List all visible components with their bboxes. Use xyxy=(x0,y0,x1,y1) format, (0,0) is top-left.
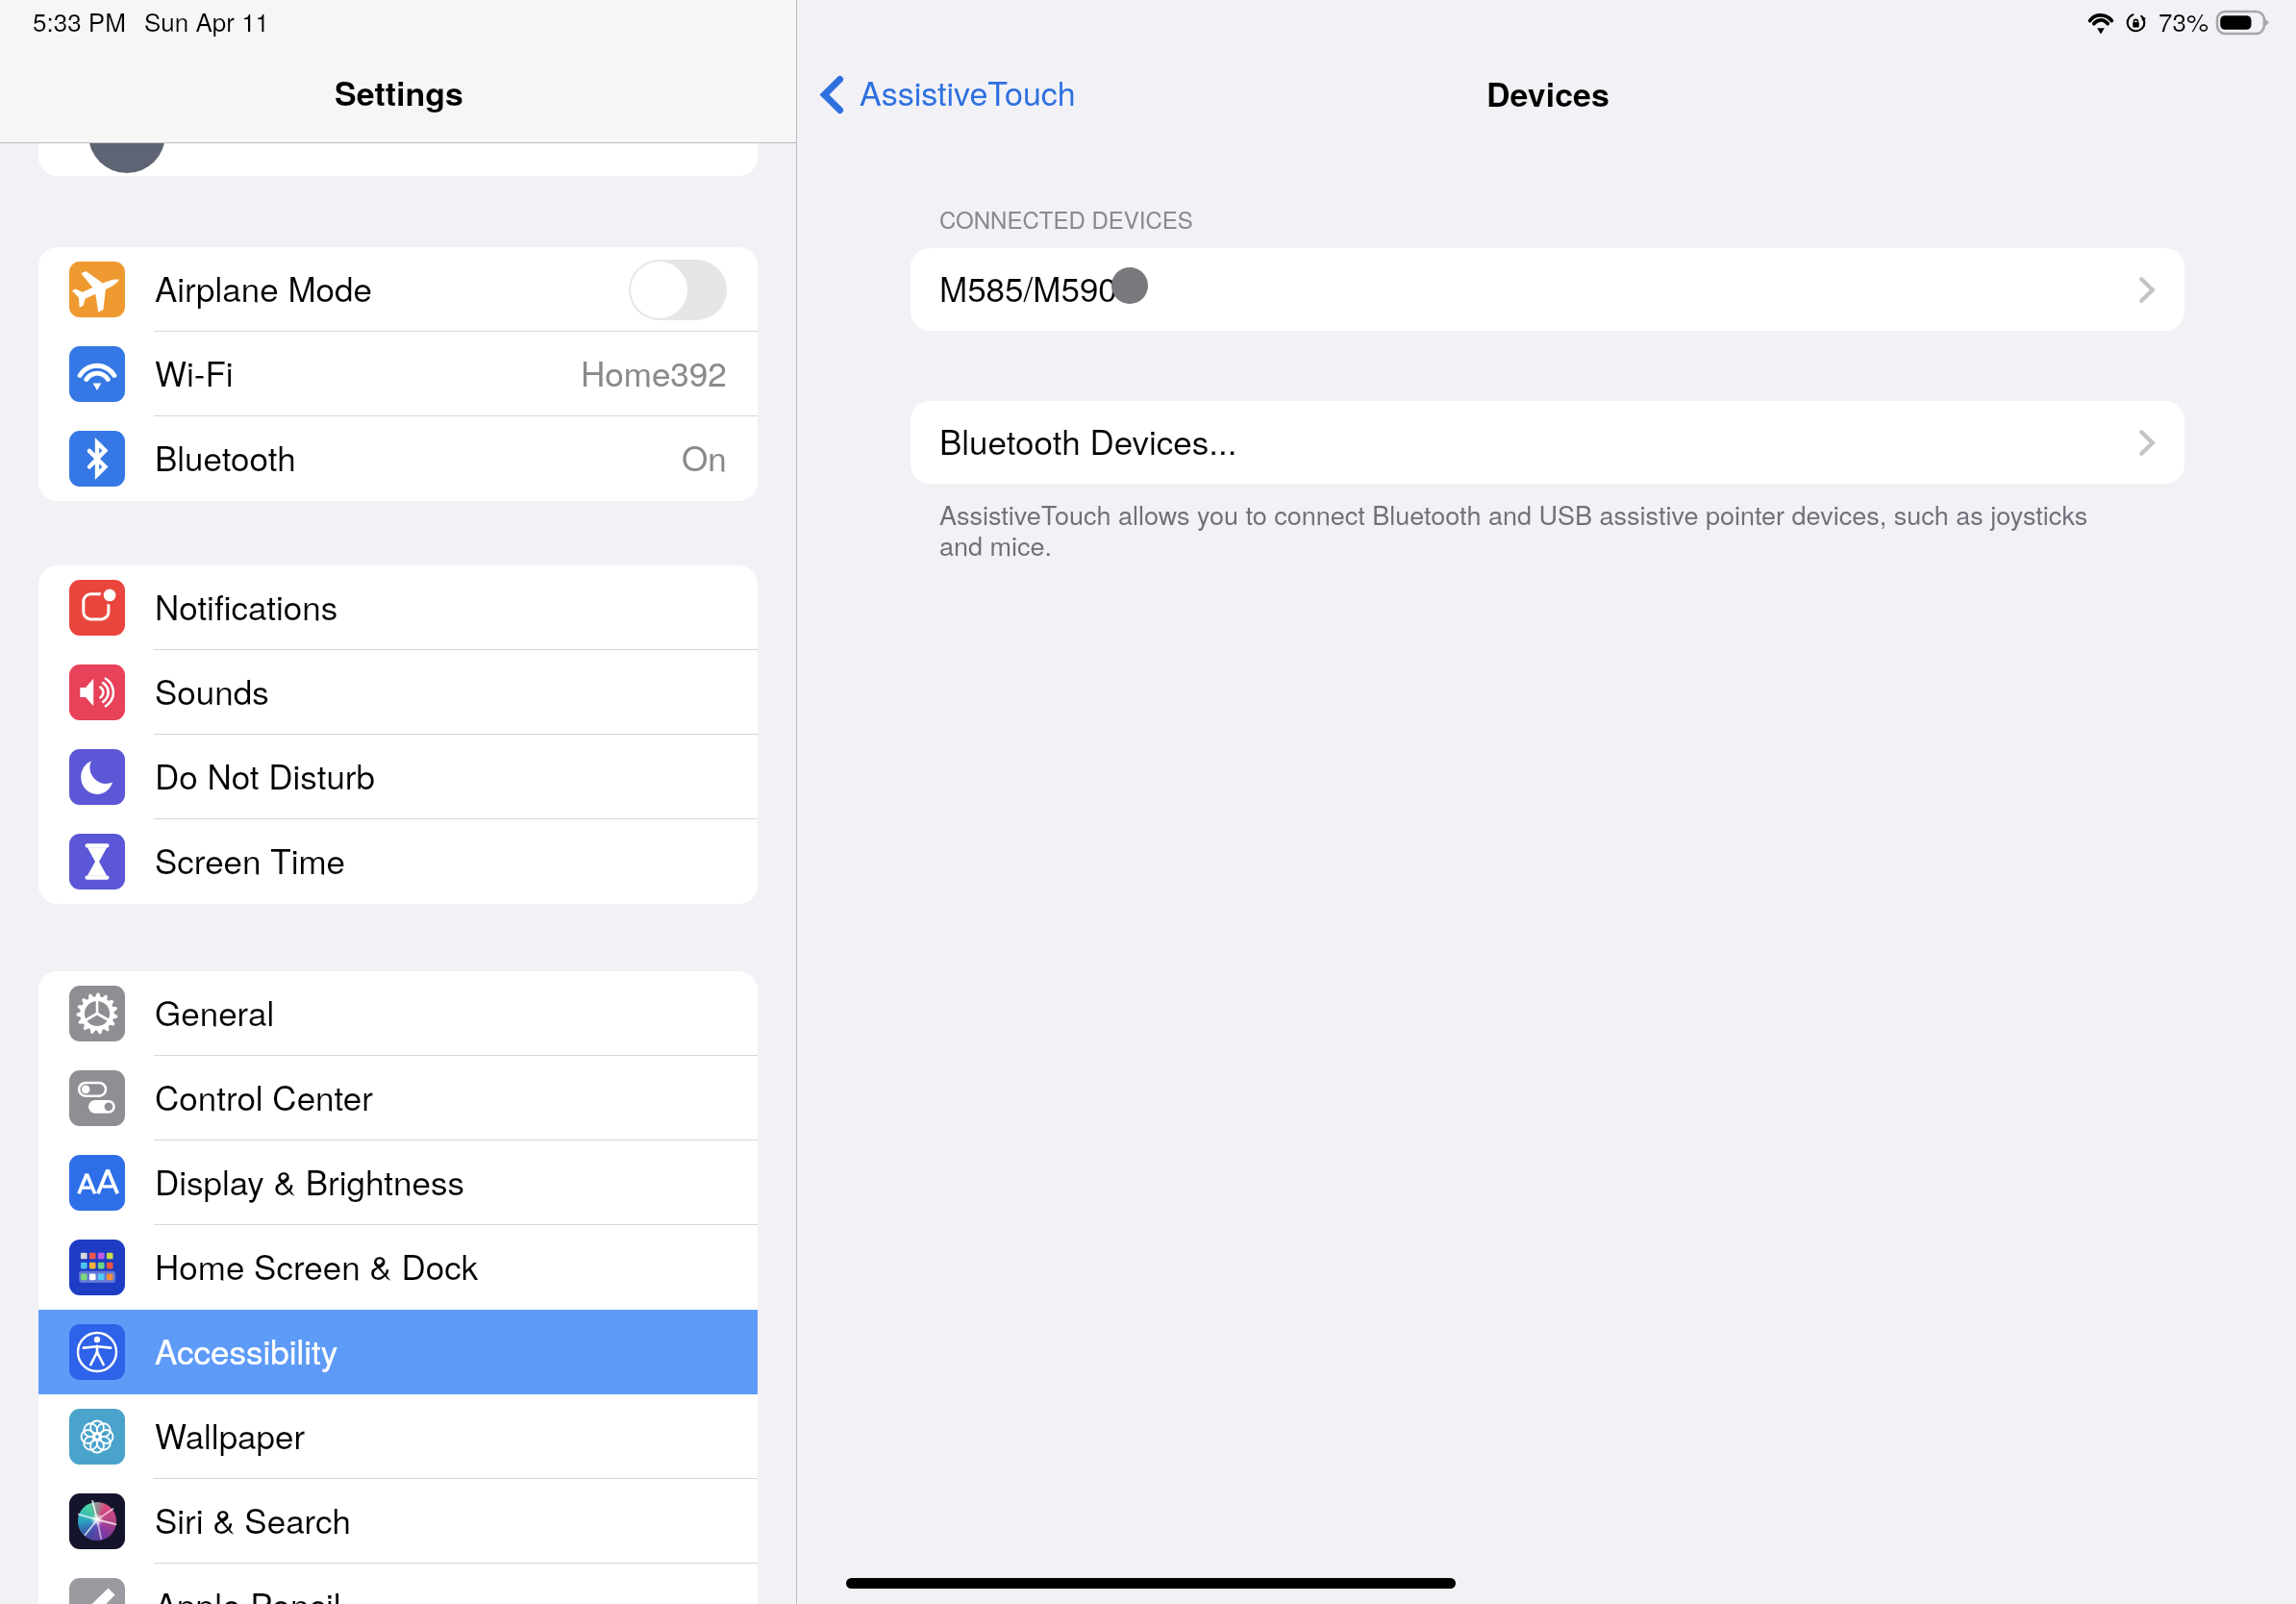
staticText: Siri & Search xyxy=(155,1502,352,1541)
staticText: AssistiveTouch xyxy=(860,75,1076,113)
staticText: CONNECTED DEVICES xyxy=(939,207,1193,234)
button[interactable]: Apple Pencil xyxy=(38,1564,758,1604)
button[interactable]: Accessibility xyxy=(38,1310,758,1394)
staticText: Control Center xyxy=(155,1079,373,1118)
staticText: Settings xyxy=(335,75,463,113)
button[interactable]: Airplane Mode toggle xyxy=(629,260,727,320)
staticText: General xyxy=(155,994,275,1034)
button[interactable]: M585/M590 xyxy=(911,248,2184,331)
staticText: Notifications xyxy=(155,589,338,628)
button[interactable]: General xyxy=(38,971,758,1056)
button[interactable]: Wallpaper xyxy=(38,1394,758,1479)
button[interactable]: Display & Brightness xyxy=(38,1140,758,1225)
staticText: M585/M590 xyxy=(939,270,1117,310)
button[interactable]: Screen Time xyxy=(38,819,758,904)
staticText: Bluetooth xyxy=(155,439,296,479)
staticText: Airplane Mode xyxy=(155,270,372,310)
staticText: Display & Brightness xyxy=(155,1164,465,1203)
staticText: Devices xyxy=(1486,76,1610,114)
staticText: Accessibility xyxy=(155,1333,338,1372)
staticText: Screen Time xyxy=(155,842,346,882)
button[interactable]: Control Center xyxy=(38,1056,758,1140)
staticText: Sun Apr 11 xyxy=(144,8,270,38)
staticText: Wi-Fi xyxy=(155,355,234,394)
button[interactable]: Bluetooth Devices... xyxy=(911,401,2184,484)
staticText: 73% xyxy=(2159,8,2209,38)
button[interactable]: Bluetooth xyxy=(38,416,758,501)
staticText: AssistiveTouch allows you to connect Blu… xyxy=(939,500,2088,562)
button[interactable]: Apple ID profile xyxy=(38,41,758,176)
button[interactable]: Airplane Mode xyxy=(38,247,758,332)
button[interactable]: Home Screen & Dock xyxy=(38,1225,758,1310)
button[interactable]: Back to AssistiveTouch xyxy=(821,75,1076,113)
button[interactable]: Do Not Disturb xyxy=(38,735,758,819)
staticText: Sounds xyxy=(155,673,269,713)
button[interactable]: Notifications xyxy=(38,565,758,650)
button[interactable]: Sounds xyxy=(38,650,758,735)
button[interactable]: Wi-Fi xyxy=(38,332,758,416)
staticText: Home Screen & Dock xyxy=(155,1248,479,1288)
staticText: Do Not Disturb xyxy=(155,758,375,797)
staticText: Home392 xyxy=(581,355,727,394)
button[interactable]: Siri & Search xyxy=(38,1479,758,1564)
staticText: 5:33 PM xyxy=(33,8,126,38)
staticText: Apple Pencil xyxy=(155,1587,341,1604)
staticText: On xyxy=(682,439,727,479)
staticText: Wallpaper xyxy=(155,1417,306,1457)
staticText: Bluetooth Devices... xyxy=(939,423,1237,463)
